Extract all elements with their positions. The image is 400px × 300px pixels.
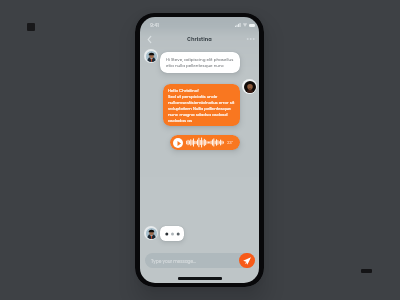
staticText: 9:41 <box>150 22 160 29</box>
button[interactable]: More options <box>246 34 256 44</box>
button[interactable]: Back <box>144 34 155 45</box>
button[interactable]: Hi Steve, adipiscing elit phasellus etia… <box>160 52 240 73</box>
staticText: 23" <box>227 140 233 146</box>
staticText: Hello Christina! Sed ut perspiciatis und… <box>168 88 237 123</box>
button[interactable]: Hello Christina! Sed ut perspiciatis und… <box>163 84 240 126</box>
button[interactable]: Type your message... <box>145 253 255 268</box>
staticText: Christina <box>187 36 212 43</box>
staticText: Hi Steve, adipiscing elit phasellus etia… <box>166 57 236 70</box>
staticText: Type your message... <box>151 258 196 264</box>
button[interactable] <box>160 226 184 241</box>
button[interactable]: Send <box>239 253 255 268</box>
button[interactable]: 23" <box>170 135 240 150</box>
